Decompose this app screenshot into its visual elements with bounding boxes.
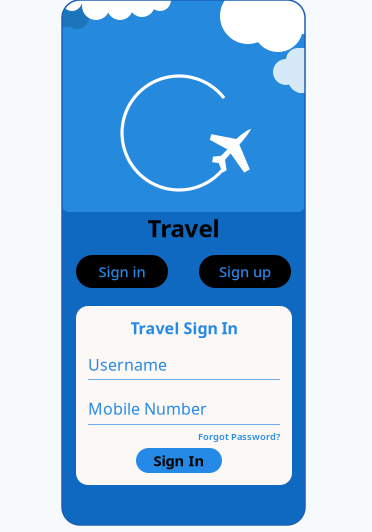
staticText: Sign up [219,262,271,281]
button[interactable]: Sign In [136,448,222,473]
staticText: Forgot Password? [198,430,280,443]
staticText: Travel [147,212,219,244]
button[interactable]: Sign in [76,255,168,288]
staticText: Username [88,354,167,375]
staticText: Sign In [153,451,204,470]
staticText: Mobile Number [88,398,207,419]
button[interactable]: Forgot Password? [160,430,280,443]
staticText: Sign in [98,262,145,281]
staticText: Travel Sign In [130,317,237,339]
button[interactable]: Sign up [199,255,291,288]
